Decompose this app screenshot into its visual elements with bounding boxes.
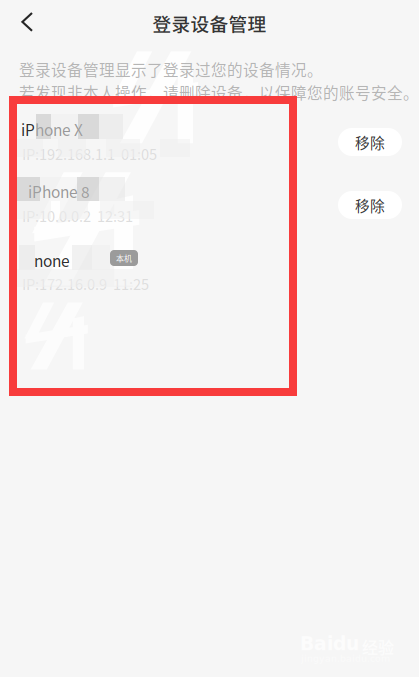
staticText: iPhone X: [21, 118, 83, 140]
button[interactable]: 移除: [338, 191, 402, 219]
staticText: 登录设备管理: [152, 9, 266, 36]
staticText: IP:192.168.1.1 01:05: [22, 143, 157, 164]
staticText: 移除: [355, 131, 385, 153]
staticText: iPhone 8: [28, 180, 90, 202]
staticText: none: [34, 249, 70, 271]
staticText: 登录设备管理显示了登录过您的设备情况。: [19, 58, 323, 81]
button[interactable]: Back: [5, 0, 49, 44]
staticText: IP:10.0.0.2 12:31: [22, 205, 133, 226]
staticText: 若发现非本人操作，请删除设备，以保障您的账号安全。: [19, 81, 419, 104]
button[interactable]: 移除: [338, 128, 402, 156]
staticText: IP:172.16.0.9 11:25: [22, 273, 149, 294]
staticText: 移除: [355, 194, 385, 216]
staticText: 本机: [116, 252, 132, 264]
